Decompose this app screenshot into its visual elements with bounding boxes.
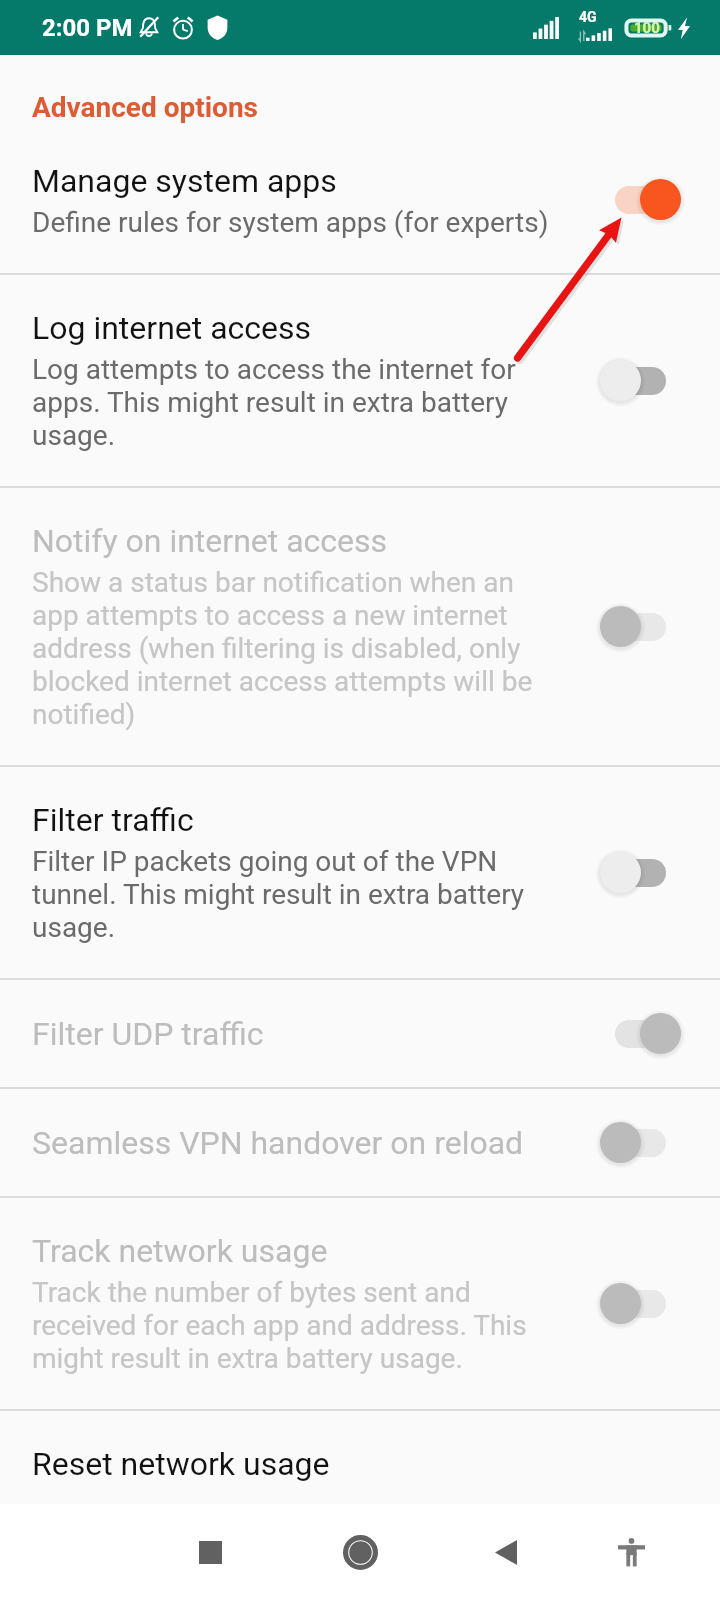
button[interactable]: Toggle [600, 1013, 681, 1054]
button[interactable]: Toggle [600, 179, 681, 220]
staticText: Define rules for system apps (for expert… [32, 206, 549, 239]
staticText: Manage system apps [32, 162, 337, 200]
button[interactable]: Manage system apps [0, 113, 720, 273]
button[interactable]: Toggle [600, 1283, 681, 1324]
button[interactable]: Notify on internet access [0, 488, 720, 765]
button[interactable]: Seamless VPN handover on reload [0, 1089, 720, 1196]
button[interactable]: Accessibility [603, 1524, 659, 1580]
button[interactable]: Track network usage [0, 1198, 720, 1409]
button[interactable]: Recents [182, 1524, 238, 1580]
staticText: Filter traffic [32, 801, 194, 839]
button[interactable]: Toggle [600, 606, 681, 647]
staticText: Filter IP packets going out of the VPN t… [32, 845, 560, 944]
staticText: Filter UDP traffic [32, 1015, 264, 1053]
staticText: Reset network usage [32, 1445, 330, 1483]
staticText: Log attempts to access the internet for … [32, 353, 560, 452]
staticText: 4G [579, 9, 597, 25]
button[interactable]: Home [332, 1524, 388, 1580]
button[interactable]: Toggle [600, 852, 681, 893]
button[interactable]: Reset network usage [0, 1411, 720, 1504]
staticText: 100 [634, 19, 660, 37]
button[interactable]: Filter traffic [0, 767, 720, 978]
staticText: Track network usage [32, 1232, 328, 1270]
staticText: Seamless VPN handover on reload [32, 1124, 524, 1162]
staticText: Notify on internet access [32, 522, 388, 560]
button[interactable]: Log internet access [0, 275, 720, 486]
button[interactable]: Toggle [600, 1122, 681, 1163]
staticText: Advanced options [32, 91, 258, 124]
button[interactable]: Back [478, 1524, 534, 1580]
staticText: 2:00 PM [42, 14, 133, 42]
button[interactable]: Filter UDP traffic [0, 980, 720, 1087]
staticText: Track the number of bytes sent and recei… [32, 1276, 560, 1375]
staticText: Log internet access [32, 309, 312, 347]
staticText: Show a status bar notification when an a… [32, 566, 560, 731]
button[interactable]: Toggle [600, 360, 681, 401]
